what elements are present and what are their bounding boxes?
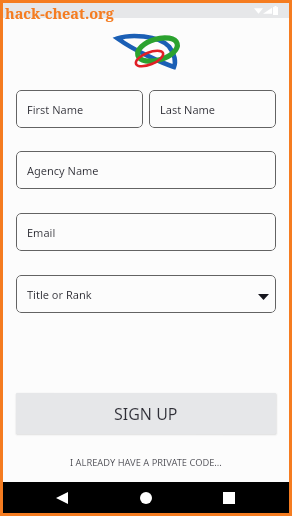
button[interactable]: Last Name	[149, 90, 276, 128]
staticText: Email	[27, 225, 56, 240]
button[interactable]: Email	[16, 213, 276, 251]
staticText: Last Name	[160, 102, 216, 117]
staticText: First Name	[27, 102, 84, 117]
button[interactable]: Home	[124, 482, 168, 513]
button[interactable]: I ALREADY HAVE A PRIVATE CODE...	[16, 456, 276, 469]
button[interactable]: SIGN UP	[16, 393, 276, 434]
staticText: SIGN UP	[114, 403, 178, 425]
button[interactable]: Title or Rank	[16, 275, 276, 313]
staticText: I ALREADY HAVE A PRIVATE CODE...	[70, 456, 222, 469]
button[interactable]: Back	[42, 482, 86, 513]
button[interactable]: Recent apps	[207, 482, 251, 513]
button[interactable]: First Name	[16, 90, 143, 128]
button[interactable]: Agency Name	[16, 151, 276, 189]
staticText: Agency Name	[27, 163, 99, 178]
staticText: Title or Rank	[27, 287, 92, 302]
staticText: hack-cheat.org	[5, 3, 114, 23]
